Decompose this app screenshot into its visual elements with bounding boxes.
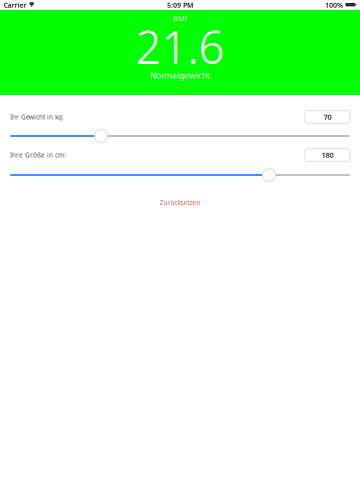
staticText: 21.6 [135,16,224,77]
button[interactable]: Gewicht einstellen [10,129,350,143]
staticText: 70 [323,112,331,122]
staticText: Zurücksetzen [159,198,200,207]
button[interactable]: Gewicht in Kilogramm [305,110,350,123]
staticText: BMI [173,14,187,23]
staticText: Normalgewicht [150,70,210,81]
staticText: 180 [321,150,333,160]
staticText: 100% [325,0,343,10]
button[interactable]: Größe in Zentimetern [305,148,350,161]
staticText: Ihre Größe in cm: [10,151,66,159]
staticText: 5:09 PM [167,0,193,10]
staticText: Ihr Gewicht in kg: [10,113,64,121]
staticText: Carrier [3,0,26,10]
button[interactable]: Zurücksetzen [10,191,350,214]
button[interactable]: Größe einstellen [10,168,350,182]
